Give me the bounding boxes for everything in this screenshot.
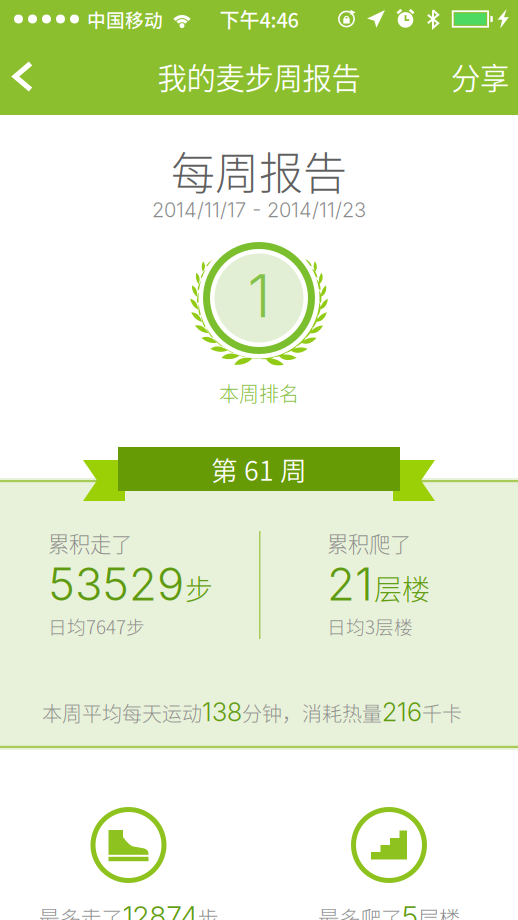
- staticText: 日均3层楼: [327, 612, 413, 639]
- staticText: 第 61 周: [211, 450, 307, 488]
- staticText: 最多爬了: [318, 902, 402, 920]
- staticText: 53529: [48, 557, 184, 611]
- staticText: 下午4:46: [219, 4, 298, 33]
- staticText: 分享: [451, 55, 509, 98]
- staticText: 21: [327, 557, 373, 611]
- staticText: 累积走了: [48, 528, 132, 558]
- staticText: 216: [382, 697, 422, 727]
- staticText: 步: [185, 568, 213, 608]
- staticText: 12874: [122, 899, 197, 920]
- staticText: 5: [402, 899, 418, 920]
- staticText: 本周平均每天运动: [42, 698, 202, 727]
- staticText: 138: [202, 697, 242, 727]
- button[interactable]: 分享: [431, 31, 518, 122]
- staticText: 层楼: [418, 902, 460, 920]
- staticText: 分钟，消耗热量: [242, 698, 382, 727]
- button[interactable]: Back: [0, 39, 54, 114]
- staticText: 2014/11/17 - 2014/11/23: [152, 198, 366, 222]
- staticText: 每周报告: [171, 139, 347, 202]
- staticText: 本周排名: [219, 378, 299, 407]
- staticText: 最多走了: [38, 902, 122, 920]
- staticText: 累积爬了: [327, 528, 411, 558]
- staticText: 我的麦步周报告: [157, 55, 360, 98]
- staticText: 千卡: [422, 698, 462, 727]
- staticText: 1: [247, 260, 270, 331]
- staticText: 日均7647步: [48, 612, 145, 639]
- staticText: 层楼: [374, 568, 430, 608]
- staticText: 中国移动: [87, 5, 163, 32]
- staticText: 步: [197, 902, 218, 920]
